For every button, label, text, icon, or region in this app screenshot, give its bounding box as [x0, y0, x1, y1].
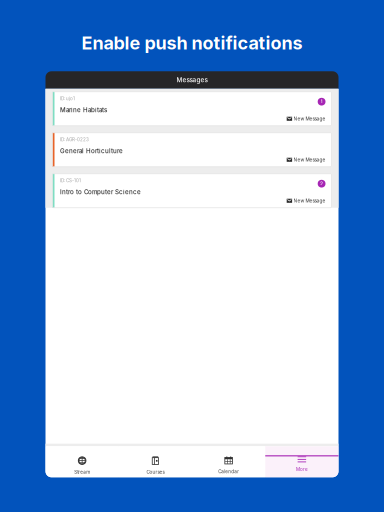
button[interactable]: More — [265, 446, 338, 477]
staticText: Intro to Computer Science — [60, 188, 141, 196]
staticText: Calendar — [218, 469, 239, 474]
staticText: Stream — [74, 469, 90, 475]
staticText: 2 — [320, 181, 323, 187]
button[interactable]: Courses — [119, 446, 192, 477]
staticText: General Horticulture — [60, 147, 123, 155]
staticText: Marine Habitats — [60, 106, 107, 114]
staticText: ID: CS-101 — [60, 178, 81, 183]
button[interactable]: 1 — [52, 92, 331, 126]
button[interactable]: Calendar — [192, 446, 265, 477]
button[interactable]: 2 — [52, 174, 331, 208]
staticText: New Message — [293, 157, 325, 162]
button[interactable]: Stream — [45, 446, 119, 477]
staticText: New Message — [293, 198, 325, 203]
staticText: New Message — [293, 116, 325, 121]
staticText: Messages — [176, 76, 207, 84]
staticText: ID: AGR-0223 — [60, 137, 89, 142]
button[interactable]: ID: AGR-0223 — [52, 133, 331, 167]
staticText: Enable push notifications — [81, 32, 302, 54]
staticText: 1 — [321, 99, 323, 105]
staticText: More — [296, 467, 308, 472]
staticText: Courses — [146, 469, 164, 475]
staticText: ID: ujo1 — [60, 96, 75, 101]
